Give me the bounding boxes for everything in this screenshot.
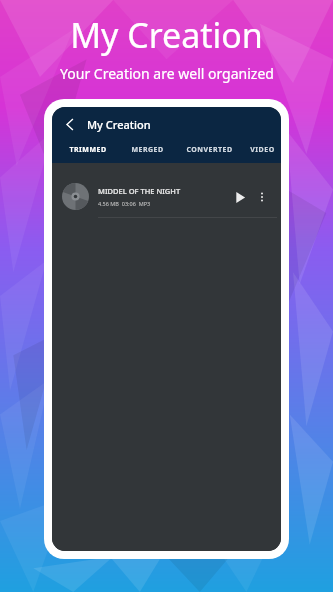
staticText: My Creation xyxy=(87,117,151,132)
button[interactable]: Play xyxy=(230,187,250,207)
staticText: CONVERTED xyxy=(186,145,233,155)
button[interactable]: TRIMMED xyxy=(58,141,118,163)
staticText: MERGED xyxy=(131,145,164,155)
staticText: VIDEO xyxy=(250,145,275,155)
staticText: My Creation xyxy=(70,12,263,58)
button[interactable]: VIDEO xyxy=(243,141,281,163)
staticText: TRIMMED xyxy=(69,145,107,155)
button[interactable]: MERGED xyxy=(118,141,176,163)
button[interactable]: More options xyxy=(253,188,271,206)
staticText: MIDDEL OF THE NIGHT xyxy=(98,186,181,196)
button[interactable]: Back xyxy=(60,114,80,134)
button[interactable]: MIDDEL OF THE NIGHT xyxy=(52,179,281,214)
button[interactable]: CONVERTED xyxy=(176,141,243,163)
staticText: 4.56 MB 03:06 MP3 xyxy=(98,200,151,207)
staticText: Your Creation are well organized xyxy=(60,64,274,83)
